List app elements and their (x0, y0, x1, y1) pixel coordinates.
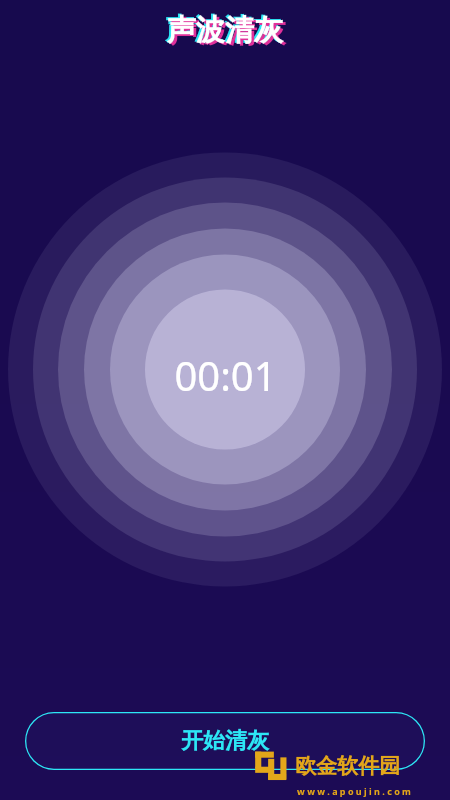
staticText: 开始清灰 (181, 727, 269, 755)
staticText: 欧金软件园 (295, 753, 400, 779)
staticText: w w w . a p o u j i n . c o m (297, 785, 411, 797)
staticText: 声波清灰 (170, 14, 286, 51)
staticText: 声波清灰 (167, 12, 283, 49)
staticText: 00:01 (174, 348, 277, 402)
button[interactable]: 开始清灰 (25, 712, 425, 770)
staticText: 声波清灰 (165, 11, 281, 48)
